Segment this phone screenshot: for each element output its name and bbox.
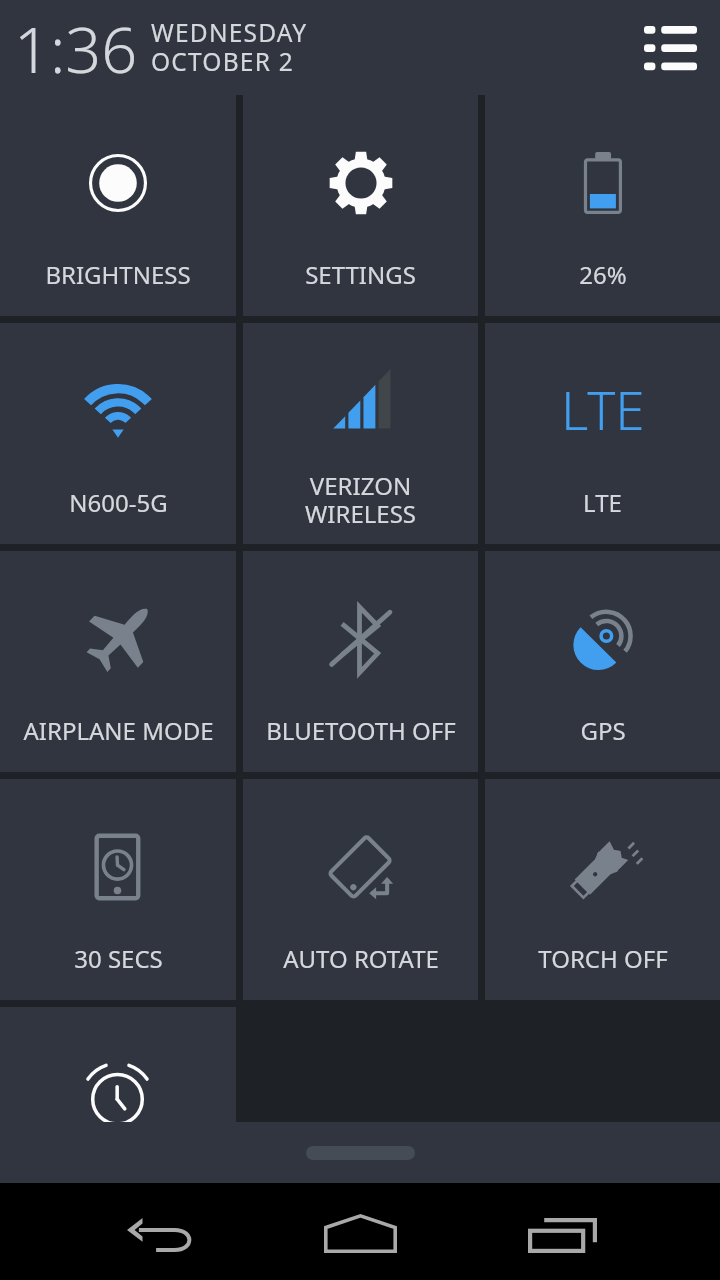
staticText: SETTINGS [305, 258, 416, 291]
button[interactable]: Alarm [0, 1007, 236, 1122]
button[interactable]: Collapse quick settings [0, 1122, 720, 1183]
staticText: AIRPLANE MODE [23, 714, 214, 747]
button[interactable]: 30 SECS [0, 779, 236, 1000]
button[interactable]: GPS [485, 551, 720, 772]
button[interactable]: BLUETOOTH OFF [243, 551, 478, 772]
staticText: 30 SECS [74, 942, 163, 975]
staticText: 26% [579, 258, 627, 291]
staticText: N600-5G [69, 486, 168, 519]
button[interactable]: AUTO ROTATE [243, 779, 478, 1000]
button[interactable]: N600-5G [0, 323, 236, 544]
staticText: TORCH OFF [538, 942, 668, 975]
button[interactable]: Back [95, 1187, 225, 1280]
staticText: VERIZON WIRELESS [305, 469, 416, 530]
button[interactable]: Home [295, 1185, 425, 1280]
button[interactable]: 26% [485, 95, 720, 316]
button[interactable]: SETTINGS [243, 95, 478, 316]
staticText: LTE [561, 373, 645, 445]
staticText: LTE [583, 486, 622, 519]
button[interactable]: Notifications [628, 16, 712, 80]
staticText: WEDNESDAY OCTOBER 2 [151, 16, 308, 78]
staticText: 1:36 [14, 6, 138, 92]
staticText: BLUETOOTH OFF [266, 714, 456, 747]
staticText: AUTO ROTATE [283, 942, 439, 975]
staticText: GPS [580, 714, 626, 747]
button[interactable]: VERIZON WIRELESS [243, 323, 478, 544]
button[interactable]: Recent apps [497, 1187, 627, 1280]
button[interactable]: BRIGHTNESS [0, 95, 236, 316]
button[interactable]: AIRPLANE MODE [0, 551, 236, 772]
button[interactable]: LTE [485, 323, 720, 544]
staticText: BRIGHTNESS [45, 258, 191, 291]
button[interactable]: TORCH OFF [485, 779, 720, 1000]
